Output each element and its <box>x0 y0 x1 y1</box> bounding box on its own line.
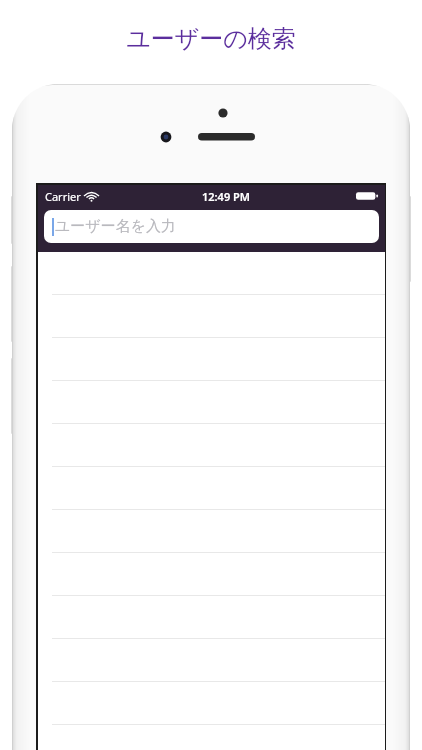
staticText: ユーザー名を入力 <box>55 217 177 236</box>
button[interactable] <box>38 682 385 725</box>
button[interactable] <box>38 596 385 639</box>
other: Battery full <box>356 191 378 201</box>
other: Wi-Fi signal <box>85 191 98 202</box>
staticText: Carrier <box>45 189 81 204</box>
button[interactable] <box>38 639 385 682</box>
button[interactable] <box>38 553 385 596</box>
button[interactable] <box>38 295 385 338</box>
button[interactable] <box>38 467 385 510</box>
button[interactable]: ユーザー名を入力 <box>44 210 379 243</box>
button[interactable] <box>38 252 385 295</box>
button[interactable] <box>38 338 385 381</box>
staticText: 12:49 PM <box>202 189 251 204</box>
button[interactable] <box>38 381 385 424</box>
button[interactable] <box>38 424 385 467</box>
staticText: ユーザーの検索 <box>0 24 422 54</box>
button[interactable] <box>38 510 385 553</box>
